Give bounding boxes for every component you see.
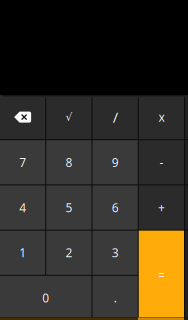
button[interactable]: 8: [46, 140, 91, 184]
staticText: -: [159, 154, 163, 170]
staticText: x: [158, 109, 164, 125]
staticText: 6: [112, 199, 119, 215]
button[interactable]: 5: [46, 185, 91, 230]
button[interactable]: 2: [46, 231, 91, 275]
button[interactable]: x: [139, 95, 184, 139]
button[interactable]: 7: [0, 140, 45, 184]
button[interactable]: /: [92, 95, 138, 139]
button[interactable]: 6: [92, 185, 138, 230]
button[interactable]: .: [92, 276, 138, 320]
button[interactable]: 4: [0, 185, 45, 230]
button[interactable]: 9: [92, 140, 138, 184]
staticText: .: [114, 290, 117, 306]
staticText: 7: [19, 154, 26, 170]
button[interactable]: 1: [0, 231, 45, 275]
staticText: 0: [167, 63, 182, 98]
staticText: 4: [19, 199, 26, 215]
button[interactable]: 3: [92, 231, 138, 275]
staticText: =: [158, 267, 165, 283]
staticText: 2: [65, 245, 72, 261]
button[interactable]: -: [139, 140, 184, 184]
staticText: 9: [112, 154, 119, 170]
staticText: 3: [112, 245, 119, 261]
staticText: /: [113, 107, 118, 127]
staticText: +: [158, 199, 165, 215]
staticText: 5: [65, 199, 72, 215]
button[interactable]: +: [139, 185, 184, 230]
button[interactable]: =: [139, 231, 184, 320]
button[interactable]: Delete: [0, 95, 45, 139]
staticText: 0: [42, 290, 49, 306]
staticText: 8: [65, 154, 72, 170]
button[interactable]: 0: [0, 276, 91, 320]
button[interactable]: √: [46, 95, 91, 139]
staticText: 1: [19, 245, 26, 261]
staticText: √: [65, 111, 72, 123]
